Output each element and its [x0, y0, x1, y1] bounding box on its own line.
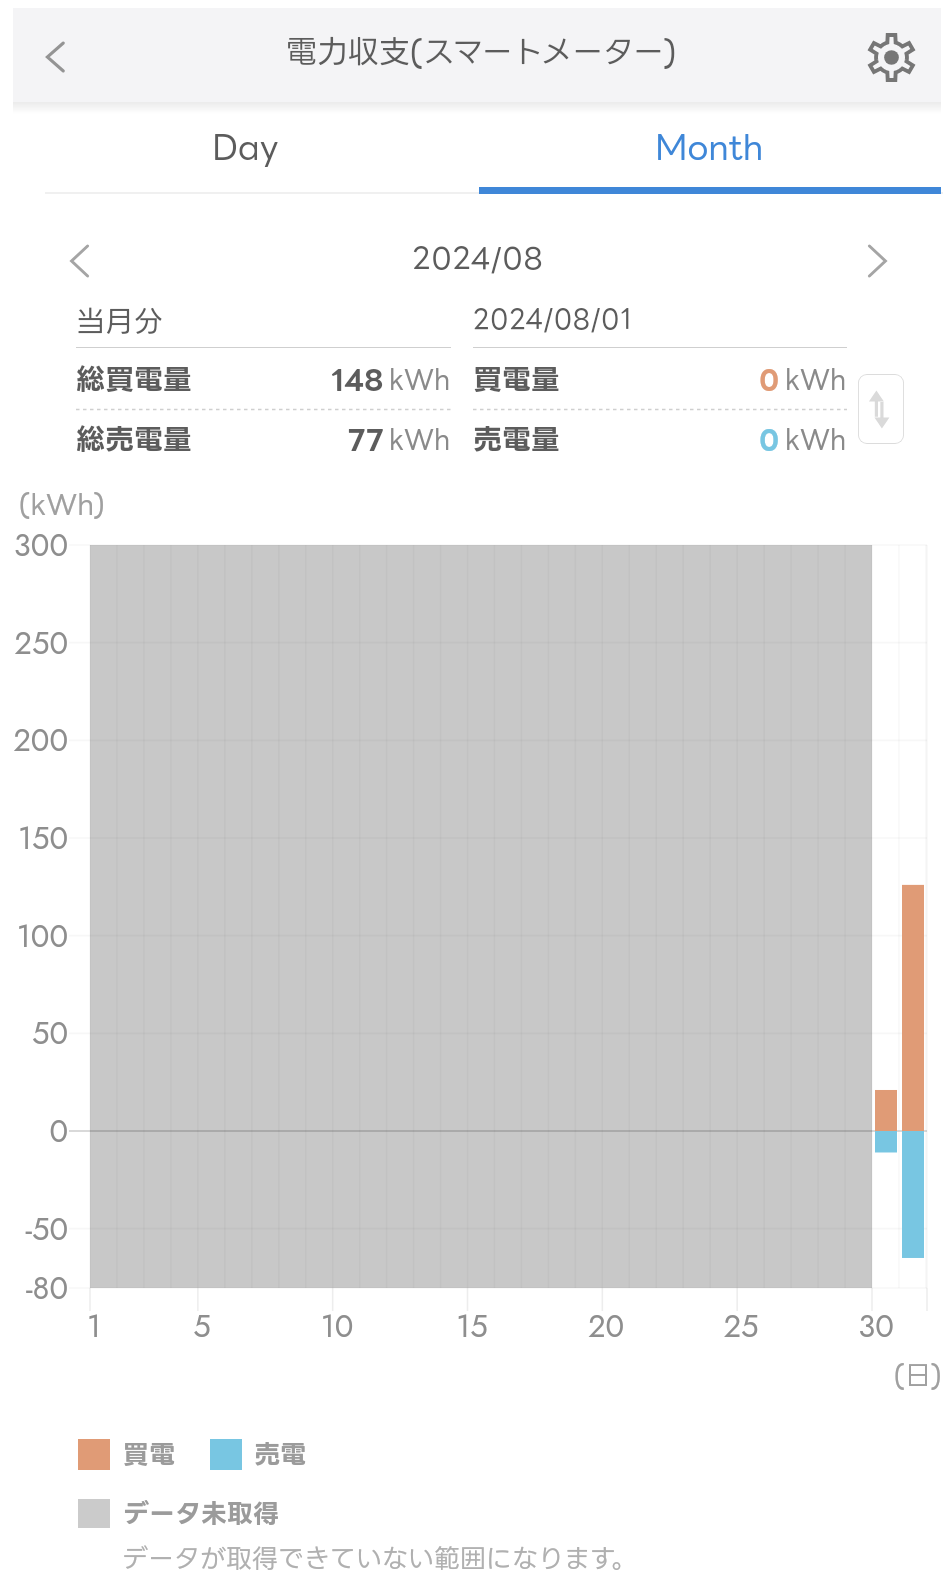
button[interactable]: Swap columns [858, 374, 904, 444]
staticText: 15 [432, 1304, 512, 1349]
staticText: kWh [785, 365, 847, 394]
staticText: 300 [2, 523, 68, 568]
staticText: (kWh) [19, 489, 106, 519]
staticText: 0 [2, 1109, 68, 1154]
button[interactable]: Settings [867, 33, 916, 82]
staticText: 当月分 [76, 305, 164, 337]
staticText: 0 [759, 424, 780, 455]
staticText: 売電 [254, 1440, 307, 1469]
staticText: 20 [566, 1304, 646, 1349]
staticText: 売電量 [473, 423, 561, 455]
staticText: -50 [2, 1207, 68, 1252]
staticText: データが取得できていない範囲になります。 [122, 1544, 637, 1573]
button[interactable]: Month [477, 102, 941, 194]
staticText: kWh [785, 425, 847, 454]
staticText: Month [655, 128, 764, 164]
staticText: 買電 [123, 1440, 176, 1469]
staticText: 1 [54, 1304, 134, 1349]
staticText: 25 [701, 1304, 781, 1349]
staticText: 電力収支(スマートメーター) [286, 34, 678, 68]
staticText: Day [212, 128, 279, 164]
staticText: (日) [894, 1361, 943, 1390]
staticText: 150 [2, 816, 68, 861]
staticText: 100 [2, 914, 68, 959]
staticText: 2024/08 [378, 242, 578, 274]
staticText: 5 [162, 1304, 242, 1349]
staticText: kWh [389, 425, 451, 454]
button[interactable]: Day [13, 102, 477, 194]
staticText: -80 [2, 1266, 68, 1311]
staticText: 77 [348, 424, 384, 455]
staticText: kWh [389, 365, 451, 394]
button[interactable]: Back [22, 23, 90, 91]
button[interactable]: Next month [841, 228, 911, 294]
staticText: 250 [2, 621, 68, 666]
staticText: 50 [2, 1011, 68, 1056]
staticText: データ未取得 [123, 1499, 280, 1528]
staticText: 30 [836, 1304, 916, 1349]
staticText: 10 [297, 1304, 377, 1349]
staticText: 2024/08/01 [473, 305, 633, 334]
staticText: 買電量 [473, 363, 561, 395]
staticText: 総売電量 [76, 423, 193, 455]
staticText: 0 [759, 364, 780, 395]
staticText: 148 [331, 364, 384, 395]
staticText: 200 [2, 718, 68, 763]
button[interactable]: Previous month [46, 228, 116, 294]
staticText: 総買電量 [76, 363, 193, 395]
